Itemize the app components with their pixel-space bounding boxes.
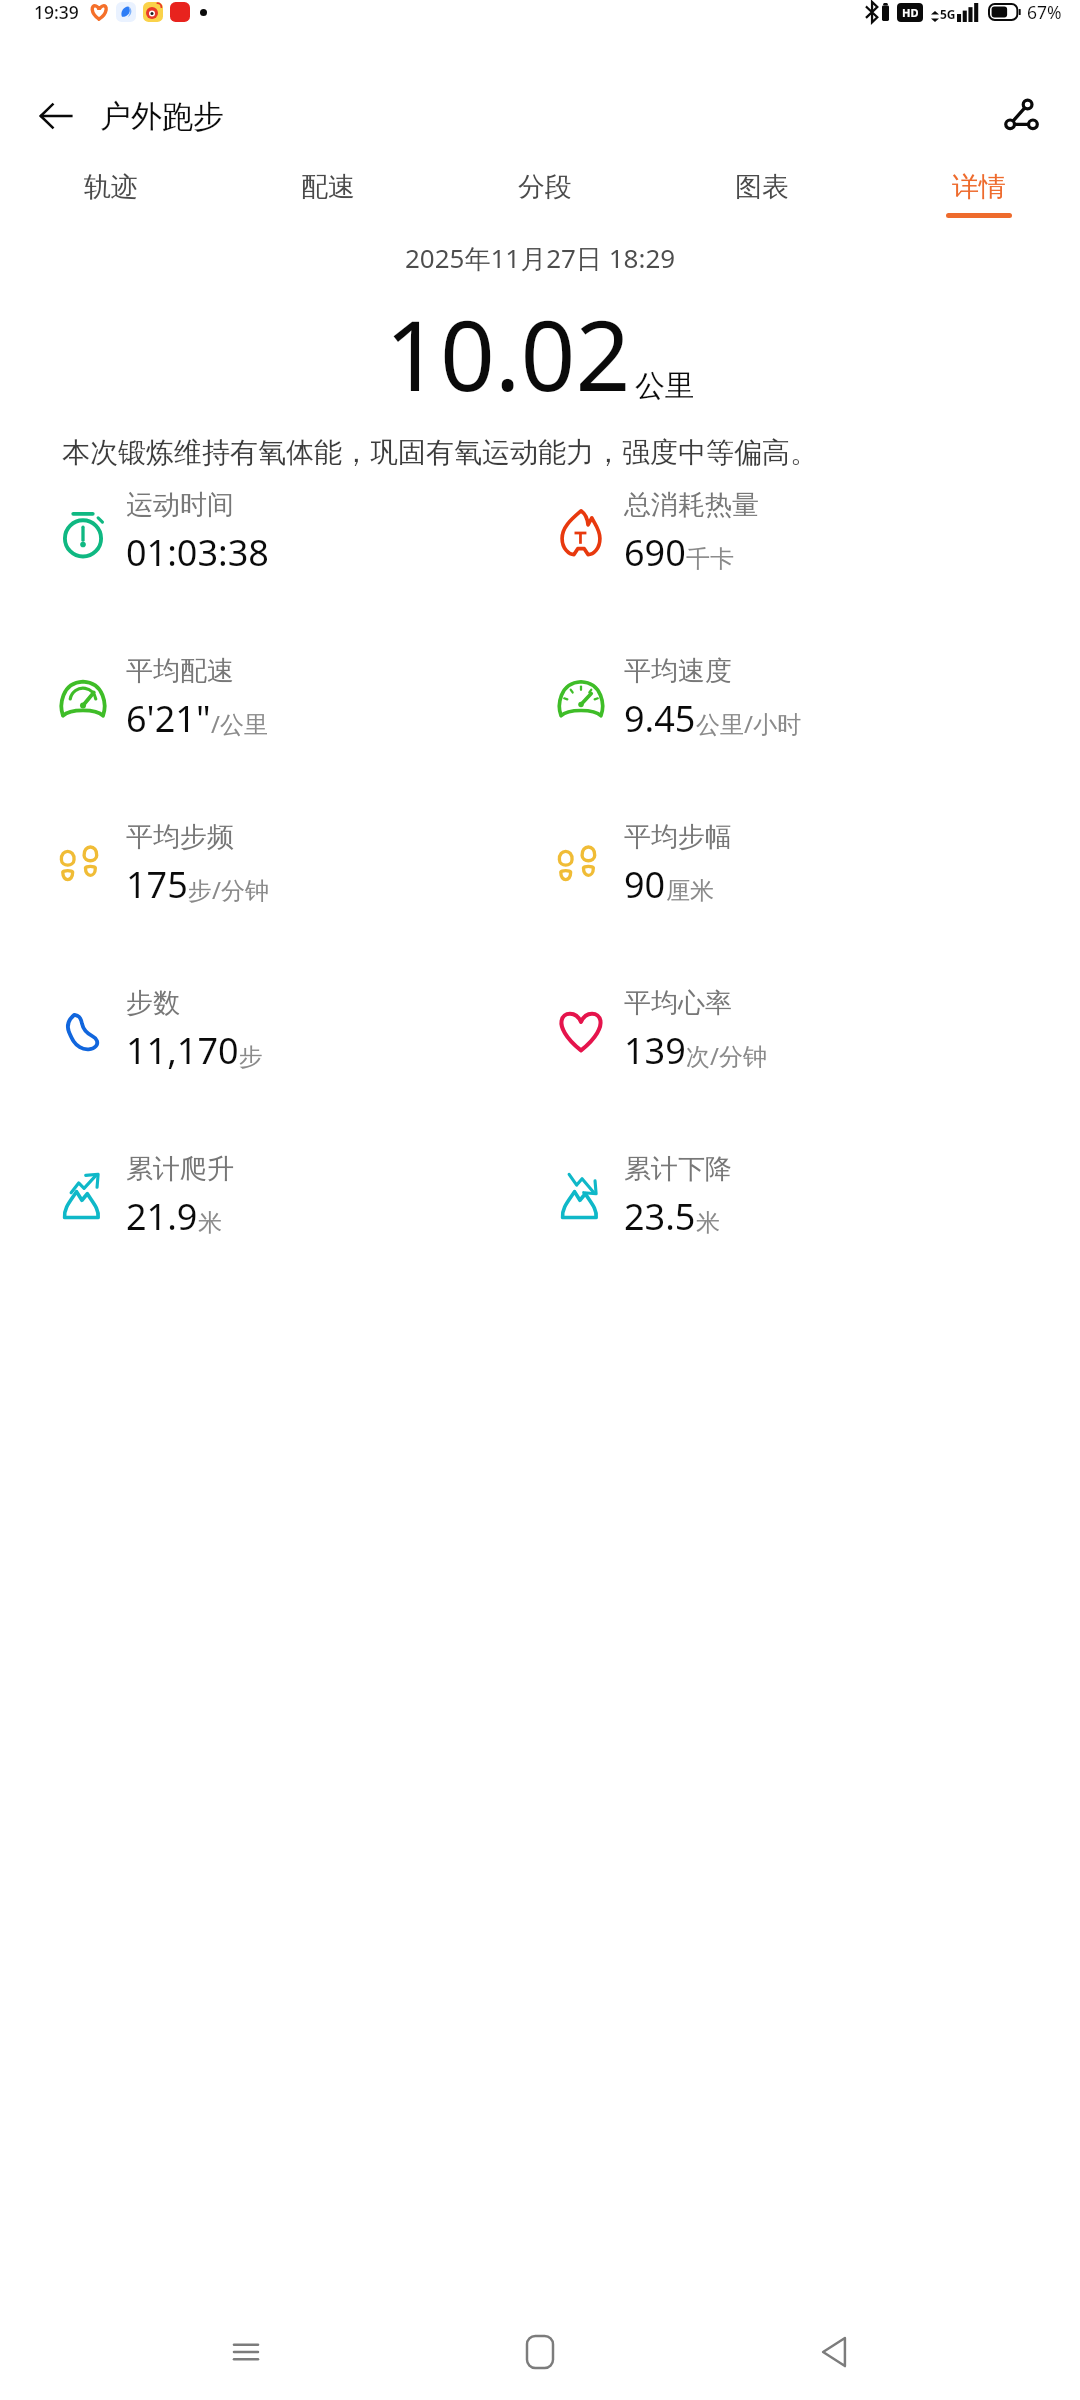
button[interactable]: 累计爬升 <box>56 1152 540 1241</box>
staticText: 累计下降 <box>624 1152 732 1186</box>
button[interactable]: 轨迹 <box>76 170 146 218</box>
staticText: 轨迹 <box>84 170 138 204</box>
staticText: 本次锻炼维持有氧体能，巩固有氧运动能力，强度中等偏高。 <box>62 435 1030 470</box>
staticText: 01:03:38 <box>126 528 269 577</box>
button[interactable]: Back <box>24 84 88 148</box>
staticText: 23.5 <box>624 1192 696 1241</box>
staticText: 累计爬升 <box>126 1152 234 1186</box>
staticText: HD <box>902 5 919 20</box>
button[interactable]: 平均心率 <box>554 986 1080 1075</box>
button[interactable]: 总消耗热量 <box>554 488 1080 577</box>
button[interactable]: 平均步幅 <box>554 820 1080 909</box>
staticText: 厘米 <box>666 876 714 906</box>
staticText: 2025年11月27日 18:29 <box>405 240 676 276</box>
button[interactable]: 图表 <box>727 170 797 218</box>
button[interactable]: 平均速度 <box>554 654 1080 743</box>
button[interactable]: Share <box>988 84 1052 148</box>
button[interactable]: 平均步频 <box>56 820 540 909</box>
staticText: 步/分钟 <box>188 873 269 906</box>
staticText: 千卡 <box>686 544 734 574</box>
staticText: 运动时间 <box>126 488 234 522</box>
button[interactable]: Recents <box>198 2304 294 2400</box>
staticText: 175 <box>126 860 188 909</box>
staticText: 10.02 <box>385 288 631 419</box>
staticText: 9.45 <box>624 694 696 743</box>
staticText: 总消耗热量 <box>624 488 759 522</box>
staticText: 139 <box>624 1026 686 1075</box>
button[interactable]: 分段 <box>510 170 580 218</box>
staticText: 详情 <box>952 170 1006 204</box>
staticText: 公里 <box>635 367 695 405</box>
button[interactable]: Home <box>492 2304 588 2400</box>
staticText: /公里 <box>211 707 268 740</box>
staticText: 平均配速 <box>126 654 234 688</box>
staticText: 配速 <box>301 170 355 204</box>
staticText: 步数 <box>126 986 180 1020</box>
button[interactable]: 平均配速 <box>56 654 540 743</box>
staticText: 90 <box>624 860 666 909</box>
staticText: 平均心率 <box>624 986 732 1020</box>
staticText: 6'21" <box>126 694 211 743</box>
staticText: 21.9 <box>126 1192 198 1241</box>
staticText: 户外跑步 <box>100 97 224 136</box>
staticText: 11,170 <box>126 1026 239 1075</box>
staticText: 平均速度 <box>624 654 732 688</box>
staticText: 平均步频 <box>126 820 234 854</box>
button[interactable]: Back <box>786 2304 882 2400</box>
staticText: 次/分钟 <box>686 1039 767 1072</box>
staticText: 分段 <box>518 170 572 204</box>
button[interactable]: 运动时间 <box>56 488 540 577</box>
staticText: 公里/小时 <box>696 707 801 740</box>
staticText: 67% <box>1027 0 1062 24</box>
staticText: 690 <box>624 528 686 577</box>
staticText: 米 <box>198 1208 222 1238</box>
button[interactable]: 详情 <box>944 170 1014 218</box>
staticText: 图表 <box>735 170 789 204</box>
button[interactable]: 配速 <box>293 170 363 218</box>
staticText: 米 <box>696 1208 720 1238</box>
staticText: 19:39 <box>34 0 79 24</box>
staticText: 5G <box>940 6 956 22</box>
button[interactable]: 累计下降 <box>554 1152 1080 1241</box>
button[interactable]: 步数 <box>56 986 540 1075</box>
staticText: 平均步幅 <box>624 820 732 854</box>
staticText: 步 <box>239 1042 263 1072</box>
